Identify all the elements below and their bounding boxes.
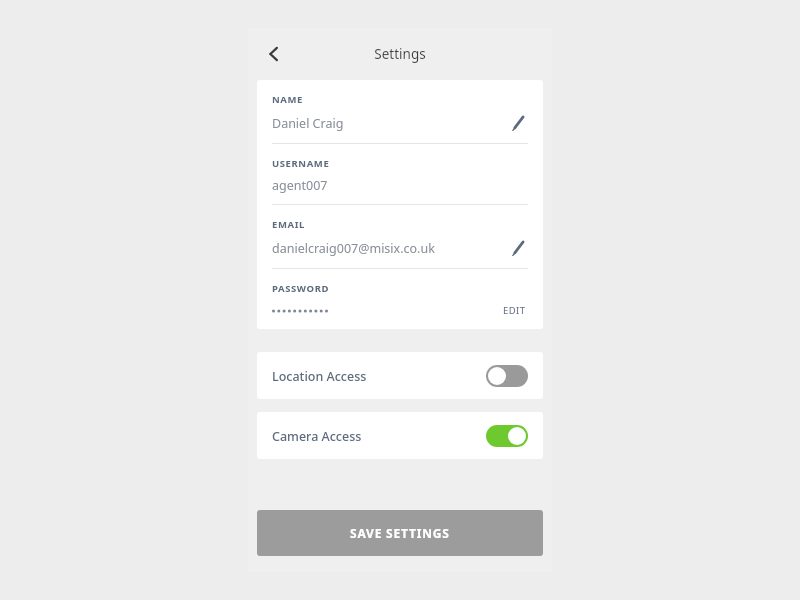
staticText: NAME	[272, 93, 303, 106]
button[interactable]: Camera Access	[257, 412, 543, 459]
staticText: EDIT	[503, 304, 526, 317]
staticText: Settings	[374, 45, 426, 63]
button[interactable]: Edit NAME	[508, 113, 528, 133]
button[interactable]: Location Access	[257, 352, 543, 399]
button[interactable]: SAVE SETTINGS	[257, 510, 543, 556]
staticText: Camera Access	[272, 428, 486, 445]
button[interactable]: Toggle on	[486, 425, 528, 447]
button[interactable]: EDIT	[501, 302, 528, 319]
staticText: agent007	[272, 177, 328, 194]
staticText: PASSWORD	[272, 282, 330, 295]
button[interactable]: Back	[258, 38, 290, 70]
staticText: danielcraig007@misix.co.uk	[272, 240, 435, 257]
staticText: Daniel Craig	[272, 115, 344, 132]
staticText: SAVE SETTINGS	[350, 525, 450, 541]
staticText: EMAIL	[272, 218, 305, 231]
button[interactable]: Toggle off	[486, 365, 528, 387]
staticText: Location Access	[272, 368, 486, 385]
button[interactable]: Edit EMAIL	[508, 238, 528, 258]
staticText: USERNAME	[272, 157, 330, 170]
